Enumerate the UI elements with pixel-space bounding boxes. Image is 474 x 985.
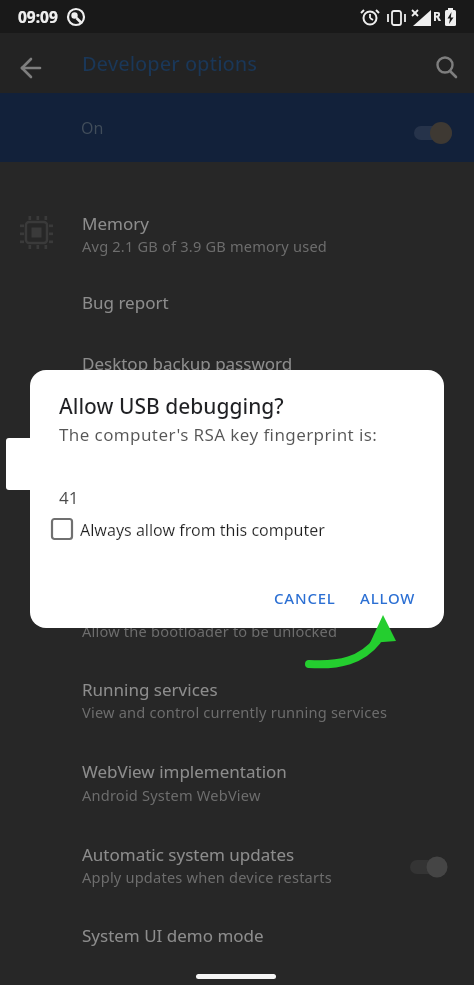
staticText: On — [81, 117, 104, 139]
button[interactable]: ALLOW — [352, 578, 424, 618]
staticText: View and control currently running servi… — [82, 702, 388, 722]
button[interactable]: CANCEL — [264, 578, 346, 618]
staticText: System UI demo mode — [82, 924, 264, 947]
staticText: R — [433, 8, 441, 24]
staticText: Desktop backup password — [82, 352, 293, 375]
staticText: Allow the bootloader to be unlocked — [82, 621, 338, 641]
staticText: WebView implementation — [82, 760, 287, 783]
staticText: Always allow from this computer — [80, 519, 325, 541]
staticText: Bug report — [82, 291, 169, 314]
button[interactable]: Developer options — [0, 33, 474, 93]
staticText: Automatic system updates — [82, 843, 295, 866]
staticText: Android System WebView — [82, 785, 261, 805]
staticText: 09:09 — [18, 6, 58, 27]
staticText: 41 — [59, 486, 79, 509]
staticText: Avg 2.1 GB of 3.9 GB memory used — [82, 236, 327, 256]
staticText: CANCEL — [274, 588, 336, 608]
staticText: Running services — [82, 678, 218, 701]
staticText: Memory — [82, 212, 149, 235]
staticText: Developer options — [82, 50, 258, 77]
staticText: Apply updates when device restarts — [82, 867, 332, 887]
button[interactable]: On — [0, 93, 474, 162]
staticText: ALLOW — [360, 588, 416, 608]
staticText: The computer's RSA key fingerprint is: — [59, 423, 378, 446]
staticText: Allow USB debugging? — [59, 392, 284, 421]
button[interactable]: Always allow from this computer — [50, 511, 330, 547]
